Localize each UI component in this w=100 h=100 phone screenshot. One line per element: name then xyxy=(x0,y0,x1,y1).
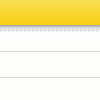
button[interactable]: Yellow note sheet xyxy=(0,0,100,25)
button[interactable]: Note line 2 xyxy=(0,58,100,84)
button[interactable]: Note line 1 xyxy=(0,32,100,58)
